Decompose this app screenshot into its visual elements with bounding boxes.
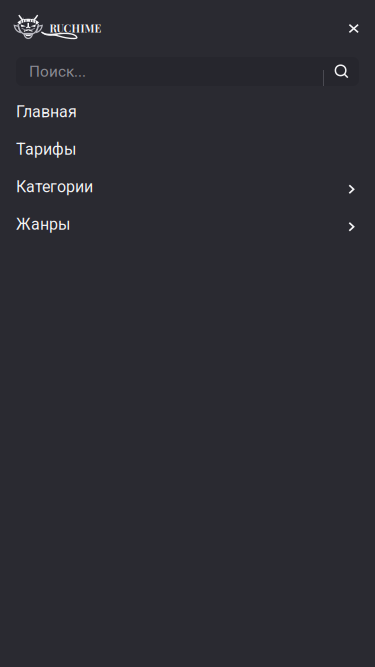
staticText: Категории	[16, 177, 93, 196]
button[interactable]: Тарифы	[0, 130, 375, 168]
staticText: Тарифы	[16, 140, 76, 159]
button[interactable]: Жанры	[0, 205, 375, 243]
staticText: Главная	[16, 102, 77, 121]
staticText: Поиск...	[29, 62, 86, 80]
staticText: RUCHIME	[49, 21, 101, 35]
button[interactable]: Главная	[0, 93, 375, 130]
button[interactable]: Категории	[0, 168, 375, 205]
button[interactable]: Close	[332, 10, 375, 47]
staticText: Жанры	[16, 215, 70, 234]
button[interactable]: RUCHIME	[0, 13, 110, 43]
button[interactable]: Search	[324, 58, 359, 85]
